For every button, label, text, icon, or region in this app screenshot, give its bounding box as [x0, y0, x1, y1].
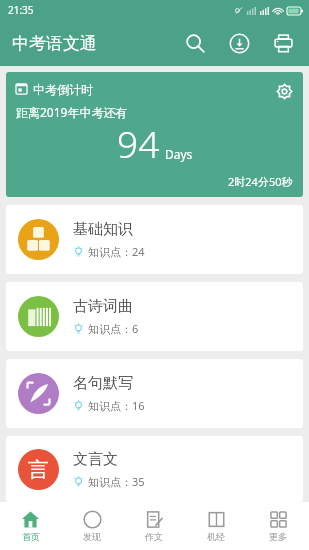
staticText: 作文	[145, 531, 163, 542]
button[interactable]: 古诗词曲	[6, 282, 303, 351]
button[interactable]: 首页	[0, 502, 61, 550]
staticText: 基础知识	[73, 220, 133, 239]
staticText: 文言文	[73, 450, 118, 469]
button[interactable]: Print	[261, 21, 305, 65]
staticText: 2时24分50秒	[228, 174, 293, 189]
button[interactable]: 名句默写	[6, 359, 303, 428]
button[interactable]: 机经	[185, 502, 247, 550]
staticText: 名句默写	[73, 374, 133, 393]
staticText: 距离2019年中考还有	[16, 104, 128, 120]
button[interactable]: 言	[6, 436, 303, 502]
staticText: 机经	[207, 531, 225, 542]
staticText: 中考语文通	[12, 33, 97, 54]
button[interactable]: 发现	[61, 502, 123, 550]
button[interactable]: Download	[217, 21, 261, 65]
staticText: 发现	[83, 531, 101, 542]
staticText: 知识点：6	[88, 321, 139, 336]
staticText: 首页	[22, 531, 40, 542]
staticText: 更多	[269, 531, 287, 542]
button[interactable]: 更多	[247, 502, 309, 550]
button[interactable]: 作文	[123, 502, 185, 550]
staticText: Days	[165, 146, 193, 162]
button[interactable]: 中考倒计时	[6, 72, 303, 197]
staticText: 古诗词曲	[73, 297, 133, 316]
staticText: 中考倒计时	[33, 82, 93, 97]
button[interactable]: Settings	[273, 80, 295, 102]
button[interactable]: 基础知识	[6, 205, 303, 274]
staticText: 21:35	[8, 3, 34, 17]
staticText: 94	[117, 118, 160, 168]
staticText: 知识点：24	[88, 244, 145, 259]
staticText: 知识点：16	[88, 398, 145, 413]
staticText: 知识点：35	[88, 474, 145, 489]
button[interactable]: Search	[173, 21, 217, 65]
staticText: 言	[28, 457, 49, 483]
